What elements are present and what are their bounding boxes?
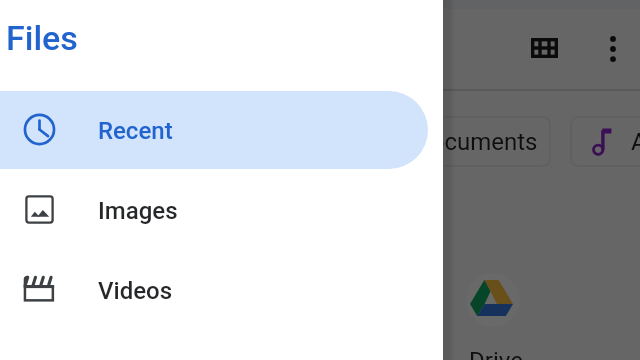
button[interactable]: Videos bbox=[0, 251, 428, 329]
staticText: Images bbox=[98, 197, 178, 225]
staticText: Files bbox=[6, 18, 78, 58]
button[interactable]: More options bbox=[589, 25, 637, 73]
button[interactable]: Documents bbox=[401, 116, 551, 167]
button[interactable]: Drive bbox=[454, 265, 532, 360]
button[interactable]: Images bbox=[0, 171, 428, 249]
button[interactable]: Grid view bbox=[520, 24, 568, 72]
staticText: Drive bbox=[466, 347, 526, 360]
staticText: Videos bbox=[98, 277, 173, 305]
button[interactable]: Audio bbox=[570, 116, 640, 167]
staticText: Recent bbox=[98, 117, 173, 145]
staticText: Documents bbox=[415, 128, 538, 156]
button[interactable]: Recent bbox=[0, 91, 428, 169]
staticText: Audio bbox=[631, 128, 640, 156]
